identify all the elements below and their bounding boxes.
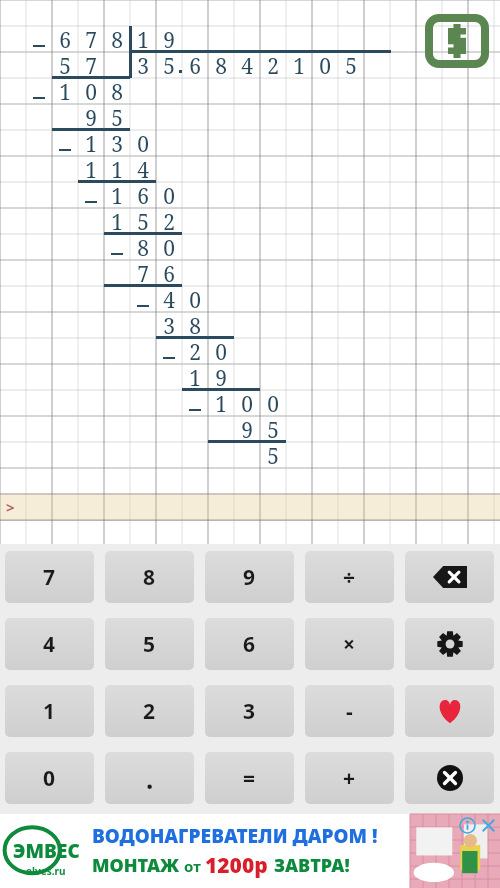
staticText: 5 — [345, 52, 357, 78]
staticText: 3 — [111, 130, 123, 156]
staticText: 0 — [43, 764, 56, 793]
staticText: 1 — [111, 208, 123, 234]
button[interactable]: 5 — [105, 618, 194, 670]
staticText: 5 — [111, 104, 123, 130]
staticText: 3 — [163, 312, 175, 338]
staticText: 9 — [163, 26, 175, 52]
staticText: 5 — [143, 630, 156, 659]
button[interactable]: 1 — [5, 685, 94, 737]
button[interactable]: ÷ — [305, 551, 394, 603]
button[interactable]: Backspace — [405, 551, 494, 603]
button[interactable]: 8 — [105, 551, 194, 603]
staticText: 3 — [243, 697, 256, 726]
staticText: 1 — [293, 52, 305, 78]
staticText: от — [184, 856, 205, 876]
staticText: 8 — [111, 78, 123, 104]
button[interactable]: 7 — [5, 551, 94, 603]
staticText: 9 — [215, 364, 227, 390]
staticText: elves.ru — [26, 864, 66, 878]
staticText: . — [146, 761, 154, 796]
button[interactable]: . — [105, 752, 194, 804]
staticText: 2 — [143, 697, 156, 726]
staticText: 1 — [189, 364, 201, 390]
staticText: + — [343, 764, 356, 793]
staticText: 4 — [137, 156, 149, 182]
staticText: 0 — [189, 286, 201, 312]
staticText: 6 — [59, 26, 71, 52]
staticText: ЭМВЕС — [13, 838, 80, 864]
staticText: 1 — [111, 156, 123, 182]
staticText: ЗАВТРА! — [274, 853, 350, 878]
staticText: 8 — [215, 52, 227, 78]
button[interactable]: Favorite — [405, 685, 494, 737]
staticText: 7 — [43, 563, 56, 592]
staticText: ÷ — [343, 563, 356, 592]
staticText: 8 — [143, 563, 156, 592]
staticText: 0 — [163, 182, 175, 208]
staticText: 6 — [243, 630, 256, 659]
staticText: 5 — [59, 52, 71, 78]
button[interactable]: > — [0, 494, 500, 520]
staticText: 9 — [243, 563, 256, 592]
staticText: 8 — [111, 26, 123, 52]
staticText: 1 — [43, 697, 56, 726]
staticText: > — [6, 497, 15, 517]
staticText: 4 — [163, 286, 175, 312]
staticText: 3 — [137, 52, 149, 78]
button[interactable]: Settings — [405, 618, 494, 670]
button[interactable]: 3 — [205, 685, 294, 737]
staticText: 6 — [189, 52, 201, 78]
staticText: 1 — [85, 130, 97, 156]
staticText: 5 — [267, 442, 279, 468]
staticText: 0 — [267, 390, 279, 416]
staticText: 1200р — [205, 851, 274, 880]
staticText: 8 — [189, 312, 201, 338]
staticText: 7 — [85, 52, 97, 78]
staticText: 7 — [137, 260, 149, 286]
button[interactable]: 2 — [105, 685, 194, 737]
staticText: 4 — [43, 630, 56, 659]
staticText: МОНТАЖ — [92, 853, 184, 878]
staticText: 5 — [267, 416, 279, 442]
button[interactable]: Close ad — [480, 817, 497, 834]
staticText: 2 — [163, 208, 175, 234]
button[interactable]: = — [205, 752, 294, 804]
button[interactable]: × — [305, 618, 394, 670]
staticText: 1 — [111, 182, 123, 208]
staticText: 4 — [241, 52, 253, 78]
button[interactable]: 9 — [205, 551, 294, 603]
staticText: 0 — [215, 338, 227, 364]
staticText: 7 — [85, 26, 97, 52]
staticText: 8 — [137, 234, 149, 260]
staticText: × — [343, 630, 356, 659]
staticText: 1 — [59, 78, 71, 104]
button[interactable]: Clear — [405, 752, 494, 804]
button[interactable]: 4 — [5, 618, 94, 670]
staticText: 2 — [189, 338, 201, 364]
staticText: 9 — [241, 416, 253, 442]
staticText: 1 — [85, 156, 97, 182]
staticText: 0 — [85, 78, 97, 104]
staticText: 5 — [137, 208, 149, 234]
button[interactable]: + — [305, 752, 394, 804]
button[interactable]: - — [305, 685, 394, 737]
staticText: = — [243, 764, 256, 793]
staticText: 0 — [163, 234, 175, 260]
button[interactable]: Ad info — [459, 817, 476, 834]
button[interactable]: Buy / remove ads — [424, 9, 490, 73]
button[interactable]: 0 — [5, 752, 94, 804]
staticText: 0 — [137, 130, 149, 156]
staticText: 5 — [163, 52, 175, 78]
staticText: 1 — [137, 26, 149, 52]
staticText: 6 — [137, 182, 149, 208]
staticText: 0 — [241, 390, 253, 416]
staticText: 0 — [319, 52, 331, 78]
staticText: - — [346, 697, 353, 726]
button[interactable]: 6 — [205, 618, 294, 670]
staticText: 1 — [215, 390, 227, 416]
staticText: 9 — [85, 104, 97, 130]
button[interactable]: ЭМВЕС — [0, 814, 500, 888]
staticText: ВОДОНАГРЕВАТЕЛИ ДАРОМ ! — [92, 823, 378, 849]
staticText: 6 — [163, 260, 175, 286]
staticText: 2 — [267, 52, 279, 78]
